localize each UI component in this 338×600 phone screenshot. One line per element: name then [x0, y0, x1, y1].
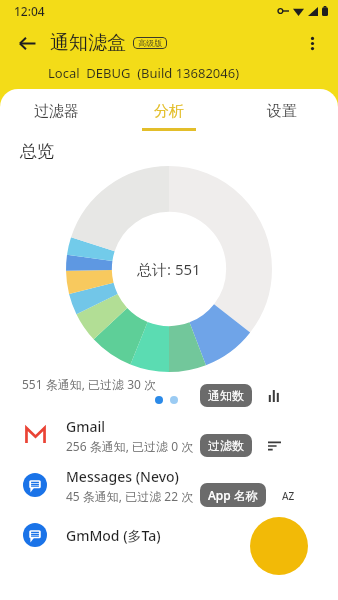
staticText: 高级版 — [138, 38, 162, 48]
staticText: 45 条通知, 已过滤 22 次 — [66, 488, 194, 504]
staticText: 设置 — [267, 102, 297, 121]
staticText: Local DEBUG (Build 13682046) — [48, 64, 240, 82]
button[interactable]: Gmail — [0, 410, 338, 460]
staticText: 551 条通知, 已过滤 30 次 — [22, 376, 157, 392]
button[interactable]: Back — [10, 26, 44, 60]
staticText: App 名称 — [208, 487, 258, 503]
button[interactable]: Add filter — [250, 517, 308, 575]
staticText: 通知数 — [208, 388, 244, 403]
button[interactable]: 过滤器 — [0, 89, 112, 133]
staticText: AZ — [282, 489, 295, 503]
staticText: 分析 — [154, 102, 184, 121]
button[interactable]: 设置 — [225, 89, 338, 133]
staticText: 过滤器 — [34, 102, 79, 121]
button[interactable]: 分析 — [112, 89, 225, 133]
button[interactable]: More options — [296, 27, 328, 59]
staticText: Gmail — [66, 417, 106, 436]
button[interactable]: Messages (Nevo) — [0, 460, 338, 510]
staticText: Messages (Nevo) — [66, 467, 179, 486]
staticText: 过滤数 — [208, 438, 244, 453]
staticText: 12:04 — [14, 3, 45, 19]
staticText: 256 条通知, 已过滤 0 次 — [66, 438, 194, 454]
staticText: 总计: 551 — [137, 259, 201, 279]
staticText: GmMod (多Ta) — [66, 526, 161, 545]
button[interactable]: GmMod (多Ta) — [0, 510, 338, 560]
staticText: 通知滤盒 — [50, 31, 126, 55]
button[interactable]: Sort by app name — [272, 479, 305, 512]
staticText: 总览 — [20, 141, 54, 162]
button[interactable]: Sort by count — [258, 379, 291, 412]
button[interactable]: Sort by filtered — [258, 429, 291, 462]
